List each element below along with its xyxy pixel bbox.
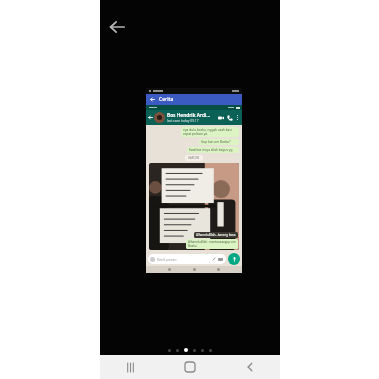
staticText: Ketik pesan <box>157 257 177 262</box>
staticText: HARI INI <box>188 156 200 160</box>
button[interactable]: Photo message <box>149 163 239 250</box>
button[interactable]: Video call <box>216 113 225 122</box>
staticText: nya dulu bosku, nggak usah kasi cepat po… <box>183 128 237 136</box>
staticText: Cerita <box>159 96 174 103</box>
button[interactable]: Home <box>160 355 220 379</box>
staticText: last seen today 09.17 <box>167 119 199 123</box>
button[interactable]: Gop kan om Bosku? <box>199 139 239 145</box>
staticText: Kwalitas insya allah bagus yg DM <box>189 148 237 152</box>
button[interactable]: Ketik pesan <box>148 254 226 264</box>
staticText: Alhamdulillah mantaaaaappp om <box>188 240 236 244</box>
staticText: Gop kan om Bosku? <box>201 140 231 144</box>
button[interactable]: Recent apps <box>100 355 160 379</box>
staticText: Bosku <box>188 244 197 248</box>
button[interactable]: Kwalitas insya allah bagus yg DM <box>187 147 239 153</box>
button[interactable]: Bos Hendrik Ardi... <box>146 110 242 125</box>
button[interactable]: Cerita <box>146 94 242 105</box>
staticText: Alhamdulillah...barang bosa <box>196 233 236 237</box>
staticText: Bos Hendrik Ardi... <box>167 112 211 119</box>
button[interactable]: nya dulu bosku, nggak usah kasi cepat po… <box>181 127 239 137</box>
button[interactable]: Back <box>220 355 280 379</box>
button[interactable]: More options <box>234 114 241 121</box>
button[interactable]: Send voice message <box>228 253 240 265</box>
button[interactable]: Back <box>102 12 132 42</box>
button[interactable]: Voice call <box>225 113 234 122</box>
